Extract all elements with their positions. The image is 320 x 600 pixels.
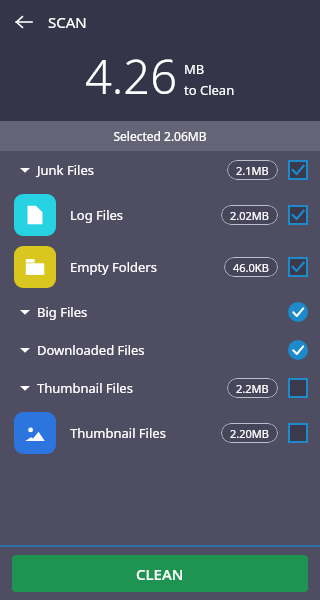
button[interactable]: Thumbnail Files xyxy=(0,369,320,407)
button[interactable]: 2.20MB xyxy=(221,423,278,443)
staticText: to Clean xyxy=(184,81,235,99)
button[interactable]: Selected xyxy=(288,302,308,322)
button[interactable]: 2.02MB xyxy=(221,205,278,225)
button[interactable]: Log Files xyxy=(0,189,320,241)
button[interactable]: 2.2MB xyxy=(227,378,278,398)
staticText: 2.02MB xyxy=(230,208,269,223)
staticText: SCAN xyxy=(48,12,87,32)
staticText: Thumbnail Files xyxy=(37,379,133,397)
button[interactable]: Selected xyxy=(288,205,308,225)
staticText: Thumbnail Files xyxy=(70,424,166,442)
button[interactable]: Downloaded Files xyxy=(0,331,320,369)
button[interactable]: Back xyxy=(10,8,91,36)
button[interactable]: 2.1MB xyxy=(227,160,278,180)
staticText: Selected 2.06MB xyxy=(113,128,207,144)
staticText: 2.2MB xyxy=(236,381,269,396)
button[interactable]: Junk Files xyxy=(0,151,320,189)
staticText: Big Files xyxy=(37,303,88,321)
staticText: 2.20MB xyxy=(230,426,269,441)
button[interactable]: CLEAN xyxy=(12,555,308,592)
staticText: Junk Files xyxy=(37,161,94,179)
staticText: CLEAN xyxy=(136,564,184,584)
button[interactable]: 46.0KB xyxy=(224,257,278,277)
button[interactable]: Selected xyxy=(288,257,308,277)
staticText: MB xyxy=(184,60,205,78)
button[interactable]: Big Files xyxy=(0,293,320,331)
staticText: 4.26 xyxy=(85,44,177,108)
button[interactable]: Not selected xyxy=(288,378,308,398)
button[interactable]: Empty Folders xyxy=(0,241,320,293)
button[interactable]: Selected xyxy=(288,160,308,180)
staticText: Log Files xyxy=(70,206,124,224)
button[interactable]: Selected xyxy=(288,340,308,360)
staticText: Empty Folders xyxy=(70,258,157,276)
staticText: Downloaded Files xyxy=(37,341,145,359)
button[interactable]: Thumbnail Files xyxy=(0,407,320,459)
staticText: 46.0KB xyxy=(233,260,269,275)
button[interactable]: Not selected xyxy=(288,423,308,443)
staticText: 2.1MB xyxy=(236,163,269,178)
